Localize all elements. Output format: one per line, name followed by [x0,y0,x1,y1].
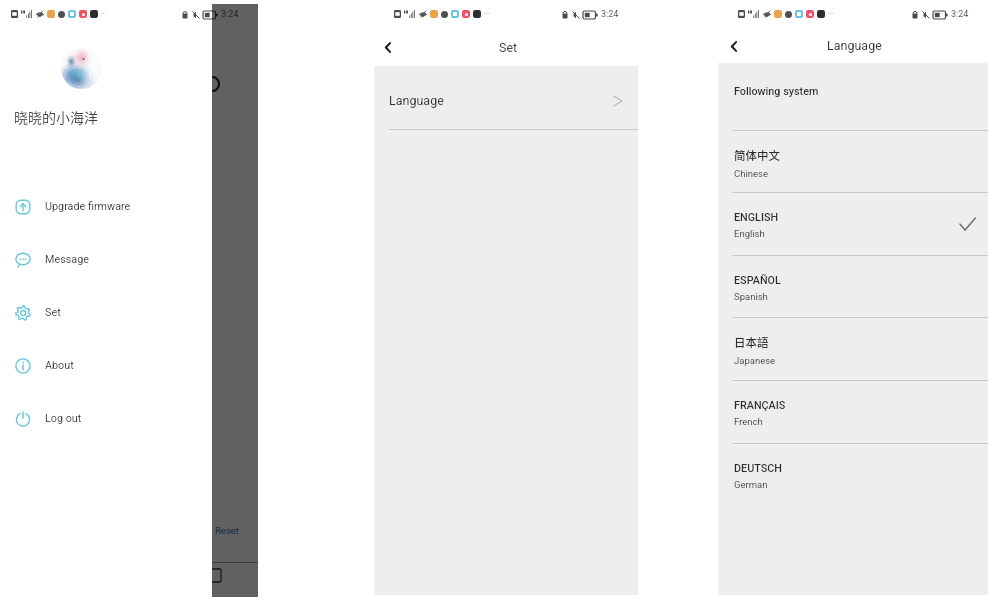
staticText: ··· [828,10,834,18]
staticText: French [734,416,763,427]
button[interactable]: Back [375,34,401,60]
button[interactable]: ESPAÑOL [718,256,988,317]
button[interactable]: Log out [0,392,212,445]
button[interactable]: Following system [718,63,988,130]
staticText: 3:24 [221,9,239,20]
button[interactable]: About [0,339,212,392]
staticText: FRANÇAIS [734,399,786,412]
staticText: ESPAÑOL [734,274,781,287]
button[interactable]: Message [0,233,212,286]
staticText: ··· [484,10,490,18]
staticText: German [734,479,768,490]
staticText: Spanish [734,291,768,302]
staticText: Japanese [734,355,776,366]
staticText: 简体中文 [734,147,780,164]
staticText: 晓晓的小海洋 [14,107,98,127]
staticText: 日本語 [734,334,769,351]
staticText: About [45,359,74,372]
staticText: Language [389,93,444,108]
staticText: Message [45,253,89,266]
staticText: English [734,228,765,239]
button[interactable]: 日本語 [718,318,988,380]
staticText: Following system [734,85,819,98]
button[interactable]: Upgrade firmware [0,180,212,233]
staticText: Language [827,38,882,53]
staticText: 3:24 [951,9,969,20]
staticText: Chinese [734,168,768,179]
button[interactable]: Back [721,33,747,59]
button[interactable]: Set [0,286,212,339]
staticText: Set [45,306,61,319]
staticText: DEUTSCH [734,462,782,475]
button[interactable]: DEUTSCH [718,444,988,506]
button[interactable]: Language [374,66,638,129]
staticText: Set [499,40,518,55]
button[interactable]: ENGLISH [718,193,988,255]
button[interactable]: FRANÇAIS [718,381,988,443]
staticText: Upgrade firmware [45,200,131,213]
staticText: 3:24 [601,9,619,20]
staticText: ··· [101,10,107,18]
staticText: Reset [215,525,239,536]
button[interactable]: 简体中文 [718,131,988,192]
staticText: Log out [45,412,82,425]
staticText: ENGLISH [734,211,779,224]
